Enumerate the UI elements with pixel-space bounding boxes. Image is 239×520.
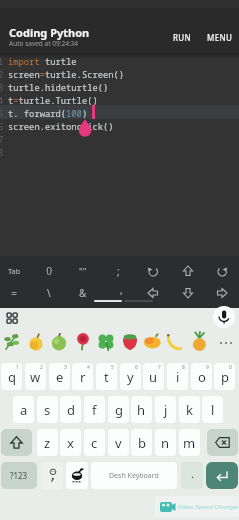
staticText: e xyxy=(56,368,64,386)
button[interactable] xyxy=(6,312,18,324)
staticText: g xyxy=(115,401,123,419)
button[interactable]: b xyxy=(131,429,152,456)
button[interactable] xyxy=(182,265,194,277)
button[interactable]: \ xyxy=(37,283,61,303)
staticText: ?123 xyxy=(10,470,28,481)
button[interactable]: MENU xyxy=(204,28,236,46)
button[interactable]: = xyxy=(2,283,26,303)
button[interactable] xyxy=(168,333,186,351)
button[interactable] xyxy=(147,265,159,277)
button[interactable] xyxy=(74,333,92,351)
button[interactable]: , xyxy=(109,280,133,300)
button[interactable] xyxy=(1,429,32,456)
button[interactable]: l xyxy=(202,396,223,423)
button[interactable] xyxy=(207,429,238,456)
button[interactable]: j xyxy=(155,396,176,423)
button[interactable] xyxy=(206,462,238,489)
staticText: 8 xyxy=(182,364,185,371)
button[interactable] xyxy=(218,334,236,352)
staticText: 7 xyxy=(0,134,4,146)
button[interactable]: i xyxy=(167,363,188,390)
button[interactable]: ?123 xyxy=(1,462,37,489)
staticText: MENU xyxy=(207,32,233,43)
button[interactable]: Desh Keyboard xyxy=(91,462,177,489)
button[interactable] xyxy=(66,462,88,489)
button[interactable]: f xyxy=(84,396,105,423)
staticText: \ xyxy=(47,286,51,300)
button[interactable]: x xyxy=(60,429,81,456)
button[interactable] xyxy=(50,333,68,351)
staticText: 7 xyxy=(158,364,161,371)
staticText: 6 xyxy=(0,121,4,133)
button[interactable]: Tab xyxy=(2,261,26,281)
button[interactable]: & xyxy=(71,283,95,303)
staticText: u xyxy=(149,368,158,386)
staticText: a xyxy=(20,401,28,419)
button[interactable]: c xyxy=(84,429,105,456)
staticText: x xyxy=(67,434,74,452)
staticText: t=turtle.Turtle() xyxy=(8,95,98,107)
staticText: = xyxy=(11,286,18,300)
button[interactable] xyxy=(216,265,228,277)
button[interactable]: n xyxy=(155,429,176,456)
staticText: 0 xyxy=(229,364,232,371)
button[interactable]: t xyxy=(96,363,117,390)
button[interactable]: e xyxy=(49,363,70,390)
button[interactable]: s xyxy=(37,396,58,423)
staticText: 5 xyxy=(111,364,114,371)
button[interactable]: RUN xyxy=(168,28,196,46)
staticText: , xyxy=(120,283,123,297)
staticText: p xyxy=(221,368,229,386)
button[interactable]: ; xyxy=(106,261,130,281)
button[interactable] xyxy=(27,333,45,351)
button[interactable] xyxy=(144,333,162,351)
staticText: screen.exitonclick() xyxy=(8,121,114,133)
button[interactable]: o xyxy=(191,363,212,390)
button[interactable]: k xyxy=(179,396,200,423)
staticText: b xyxy=(138,434,146,452)
button[interactable] xyxy=(97,333,115,351)
button[interactable]: p xyxy=(214,363,235,390)
button[interactable]: r xyxy=(72,363,93,390)
button[interactable] xyxy=(213,306,235,328)
staticText: 8 xyxy=(0,147,4,159)
staticText: l xyxy=(211,401,215,419)
staticText: y xyxy=(127,368,134,386)
button[interactable]: w xyxy=(25,363,46,390)
button[interactable] xyxy=(121,333,139,351)
button[interactable]: h xyxy=(131,396,152,423)
staticText: w xyxy=(30,368,41,386)
button[interactable]: v xyxy=(108,429,129,456)
button[interactable] xyxy=(42,462,63,489)
staticText: & xyxy=(79,286,87,300)
button[interactable] xyxy=(147,287,159,299)
staticText: 3 xyxy=(0,82,4,94)
button[interactable]: y xyxy=(120,363,141,390)
staticText: . xyxy=(191,466,194,481)
button[interactable]: u xyxy=(143,363,164,390)
staticText: n xyxy=(161,434,170,452)
button[interactable] xyxy=(182,287,194,299)
staticText: 4 xyxy=(0,95,4,107)
button[interactable]: {} xyxy=(37,261,61,281)
button[interactable]: g xyxy=(108,396,129,423)
button[interactable]: q xyxy=(1,363,22,390)
staticText: 2 xyxy=(0,69,4,81)
button[interactable]: d xyxy=(60,396,81,423)
button[interactable]: . xyxy=(181,462,203,489)
button[interactable] xyxy=(3,333,21,351)
button[interactable]: "" xyxy=(71,261,95,281)
staticText: {} xyxy=(46,265,53,277)
staticText: 9 xyxy=(206,364,209,371)
button[interactable]: a xyxy=(13,396,34,423)
button[interactable]: z xyxy=(37,429,58,456)
staticText: q xyxy=(8,368,16,386)
staticText: j xyxy=(164,401,168,419)
staticText: t xyxy=(104,368,109,386)
button[interactable]: m xyxy=(179,429,200,456)
staticText: v xyxy=(115,434,122,452)
staticText: Auto saved at 09:24:34 xyxy=(9,39,79,48)
staticText: m xyxy=(183,434,196,452)
button[interactable] xyxy=(216,287,228,299)
button[interactable] xyxy=(191,333,209,351)
